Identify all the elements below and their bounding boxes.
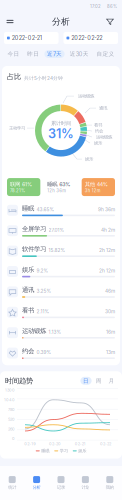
button[interactable]: 约会 — [2, 343, 120, 363]
staticText: 46m — [105, 288, 115, 294]
staticText: 0 — [12, 436, 15, 441]
staticText: 月 — [108, 377, 114, 384]
staticText: 睡眠 63% — [47, 181, 70, 188]
staticText: 分析 — [52, 16, 70, 27]
staticText: 12h 36m — [47, 188, 66, 193]
staticText: 30m — [105, 309, 115, 314]
button[interactable]: 我的 — [98, 466, 122, 500]
button[interactable]: 2022-02-21 — [4, 32, 58, 44]
staticText: 分析 — [33, 485, 41, 490]
staticText: 运动锻炼 — [22, 327, 46, 335]
staticText: 1.13% — [48, 329, 61, 335]
button[interactable]: Filter — [104, 14, 120, 28]
staticText: 02-22 — [100, 441, 111, 446]
staticText: 通讯 — [99, 105, 107, 111]
staticText: 全屏学习 — [22, 225, 46, 233]
button[interactable]: 2022-02-22 — [63, 32, 118, 44]
staticText: 睡眠 — [22, 204, 34, 212]
staticText: 看书 — [94, 122, 102, 128]
staticText: 联网 61% — [10, 181, 32, 188]
staticText: 娱乐 — [85, 156, 93, 162]
staticText: 2022-02-22 — [71, 35, 102, 41]
staticText: 看书 — [22, 306, 34, 314]
staticText: 记录 — [57, 485, 65, 490]
staticText: 27.01% — [48, 227, 64, 233]
staticText: 近30天 — [70, 50, 89, 58]
button[interactable]: 统计 — [0, 466, 24, 500]
staticText: 周 — [96, 377, 102, 384]
staticText: 9h 36m — [98, 207, 115, 212]
button[interactable]: 娱乐 — [2, 261, 120, 282]
button[interactable]: 月 — [106, 377, 117, 385]
staticText: 娱乐 — [78, 448, 86, 454]
staticText: 43.65% — [36, 207, 54, 212]
button[interactable]: 记录 — [49, 466, 73, 500]
staticText: 昨日 — [27, 50, 39, 58]
staticText: 31% — [48, 126, 74, 141]
staticText: 2022-02-21 — [12, 35, 42, 41]
staticText: 主动学习 — [9, 125, 25, 131]
button[interactable]: 自定义 — [94, 50, 117, 58]
staticText: 累计时间 — [51, 120, 71, 126]
staticText: 运动锻炼 — [78, 93, 94, 99]
staticText: 3.25% — [36, 288, 51, 294]
staticText: 其他 44% — [85, 181, 108, 188]
button[interactable]: Menu — [2, 14, 18, 28]
button[interactable]: 日 — [80, 377, 92, 385]
staticText: 3h 12m — [85, 188, 101, 193]
staticText: 0.39% — [36, 349, 51, 355]
button[interactable]: 昨日 — [25, 50, 42, 58]
staticText: 2.11% — [36, 309, 49, 314]
staticText: 约会 — [95, 128, 103, 134]
staticText: 780 — [8, 407, 15, 412]
button[interactable]: 联网 61% — [7, 178, 40, 196]
staticText: 我的 — [106, 485, 114, 490]
staticText: 运动锻炼 — [96, 134, 112, 140]
staticText: 02-19 — [24, 441, 35, 446]
staticText: 计划 — [81, 485, 89, 490]
staticText: 时间趋势 — [5, 376, 33, 385]
staticText: 9.2% — [36, 268, 48, 274]
staticText: 1040 — [4, 397, 15, 402]
button[interactable]: 看书 — [2, 302, 120, 322]
button[interactable]: 睡眠 63% — [44, 178, 78, 196]
button[interactable]: 软件学习 — [2, 241, 120, 261]
staticText: 86% — [107, 4, 117, 9]
staticText: 2h 12m — [99, 247, 115, 253]
staticText: 学习 — [60, 448, 68, 454]
staticText: 近7天 — [47, 50, 62, 58]
button[interactable]: 全屏学习 — [2, 220, 120, 241]
staticText: 睡眠 — [41, 448, 49, 454]
staticText: 软件学习 — [22, 245, 46, 253]
staticText: 通讯 — [22, 286, 34, 294]
staticText: 自定义 — [96, 50, 114, 58]
staticText: 02-20 — [49, 441, 61, 446]
staticText: 约会 — [22, 347, 34, 355]
button[interactable]: 睡眠 — [2, 200, 120, 220]
staticText: 娱乐 — [94, 140, 102, 146]
staticText: 1300 — [5, 388, 15, 392]
staticText: 16m — [106, 329, 115, 335]
staticText: 78.21% — [10, 188, 25, 193]
staticText: 统计 — [8, 485, 16, 490]
staticText: 15.82% — [48, 247, 65, 253]
staticText: 日 — [83, 377, 89, 384]
staticText: 13m — [106, 349, 115, 355]
button[interactable]: 其他 44% — [82, 178, 115, 196]
button[interactable]: 近30天 — [67, 50, 91, 58]
button[interactable]: 近7天 — [44, 50, 65, 58]
staticText: 占比 — [7, 72, 21, 81]
staticText: 娱乐 — [22, 265, 34, 274]
staticText: 260 — [8, 426, 15, 431]
button[interactable]: 今日 — [5, 50, 22, 58]
staticText: 520 — [8, 417, 15, 422]
staticText: 4h 2m — [101, 227, 115, 233]
button[interactable]: 计划 — [73, 466, 98, 500]
button[interactable]: 分析 — [24, 466, 49, 500]
staticText: 17:02 — [90, 4, 101, 9]
button[interactable]: 通讯 — [2, 282, 120, 302]
button[interactable]: 运动锻炼 — [2, 322, 120, 343]
button[interactable]: 周 — [93, 377, 104, 385]
staticText: 2h 12m — [99, 268, 115, 274]
staticText: 今日 — [8, 50, 20, 58]
